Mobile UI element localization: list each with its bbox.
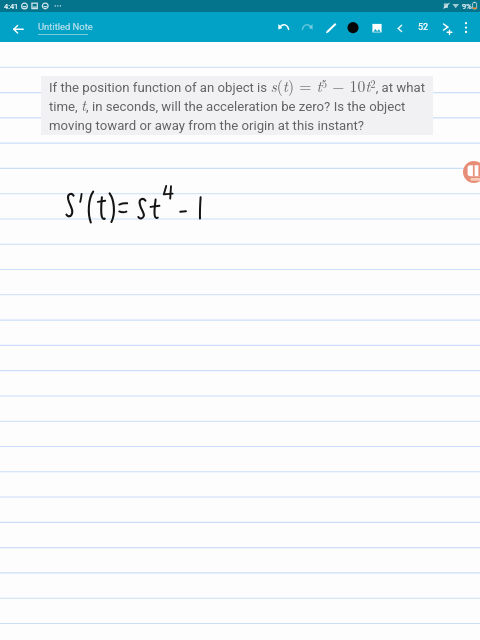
staticText: 4:41: [4, 2, 19, 11]
button[interactable]: Add page: [439, 16, 455, 40]
button[interactable]: Profile avatar: [463, 161, 480, 183]
staticText: If the position function of an object is…: [49, 68, 447, 134]
button[interactable]: More options: [458, 16, 474, 40]
button[interactable]: Undo: [276, 16, 292, 40]
button[interactable]: Redo: [299, 16, 315, 40]
button[interactable]: 52: [412, 16, 434, 38]
button[interactable]: Colour: [345, 16, 361, 40]
button[interactable]: Previous page: [392, 16, 408, 40]
button[interactable]: Untitled Note: [38, 21, 93, 35]
button[interactable]: [41, 76, 433, 135]
staticText: Untitled Note: [38, 21, 93, 32]
button[interactable]: Insert image: [369, 16, 385, 40]
button[interactable]: Pen: [323, 16, 339, 40]
button[interactable]: Back: [9, 18, 27, 36]
staticText: 52: [418, 22, 429, 33]
staticText: 9%: [462, 2, 472, 11]
